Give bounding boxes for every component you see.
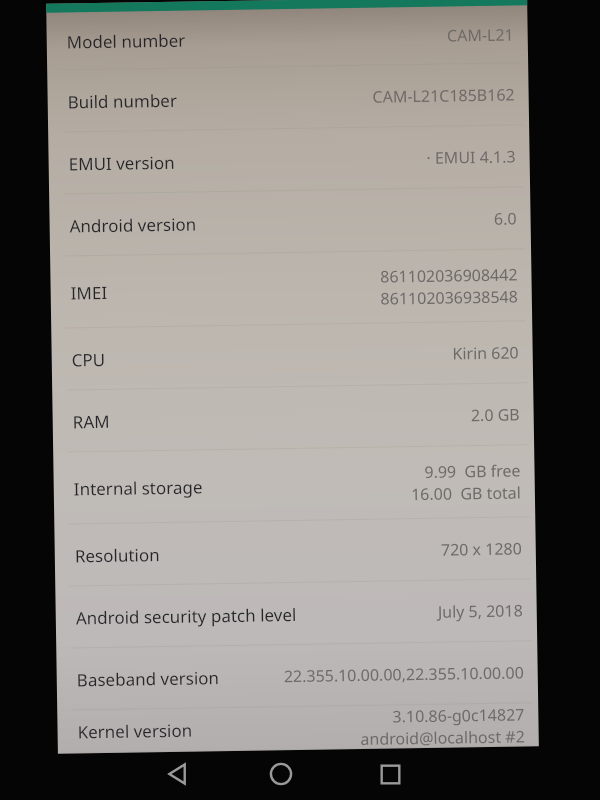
button[interactable]: Android security patch level — [55, 579, 537, 649]
staticText: 861102036908442 — [379, 263, 518, 288]
button[interactable]: Internal storage — [53, 445, 535, 525]
staticText: RAM — [72, 410, 110, 433]
button[interactable]: IMEI — [50, 249, 532, 329]
staticText: CAM-L21C185B162 — [371, 83, 515, 108]
staticText: Model number — [67, 29, 186, 53]
button[interactable]: EMUI version — [48, 125, 530, 195]
staticText: 9.99 GB free — [423, 459, 521, 483]
button[interactable]: CPU — [51, 321, 533, 391]
staticText: CAM-L21 — [446, 23, 514, 46]
staticText: IMEI — [70, 281, 108, 304]
staticText: CPU — [72, 348, 106, 371]
button[interactable]: Back — [150, 748, 206, 800]
staticText: · EMUI 4.1.3 — [425, 145, 516, 169]
button[interactable]: Model number — [46, 5, 528, 71]
staticText: July 5, 2018 — [438, 599, 523, 623]
staticText: Resolution — [75, 543, 160, 567]
staticText: Android version — [69, 212, 197, 237]
staticText: Android security patch level — [76, 603, 297, 629]
staticText: Kirin 620 — [451, 341, 519, 364]
staticText: 861102036938548 — [380, 285, 518, 310]
staticText: 720 x 1280 — [441, 537, 522, 561]
button[interactable]: Baseband version — [56, 641, 538, 711]
staticText: 2.0 GB — [470, 403, 520, 426]
button[interactable]: Recent apps — [362, 748, 418, 800]
staticText: Internal storage — [74, 475, 203, 500]
staticText: 22.355.10.00.00,22.355.10.00.00 — [284, 661, 524, 687]
button[interactable]: RAM — [52, 383, 534, 453]
button[interactable]: Kernel version — [57, 703, 539, 754]
staticText: android@localhost #2 — [360, 725, 525, 749]
staticText: Baseband version — [77, 666, 220, 691]
staticText: EMUI version — [68, 151, 176, 175]
staticText: Kernel version — [77, 719, 193, 743]
button[interactable]: Resolution — [54, 517, 536, 587]
button[interactable]: Home — [253, 748, 309, 800]
button[interactable]: Build number — [47, 63, 529, 133]
staticText: Build number — [67, 89, 178, 113]
button[interactable]: Android version — [49, 187, 531, 257]
staticText: 16.00 GB total — [411, 481, 521, 505]
staticText: 3.10.86-g0c14827 — [392, 703, 524, 727]
staticText: 6.0 — [493, 207, 517, 230]
